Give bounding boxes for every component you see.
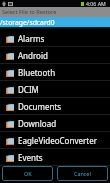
staticText: DCIM [18,84,39,95]
other: Download notification [2,1,6,7]
staticText: 4:06 AM [86,0,106,7]
staticText: Select File to Restore [2,8,57,16]
button[interactable]: Android [0,47,110,64]
staticText: /storage/sdcard0 [0,18,55,27]
staticText: Bluetooth [18,67,56,78]
button[interactable]: Bluetooth [0,64,110,81]
staticText: Download [18,118,57,129]
button[interactable]: Documents [0,98,110,115]
staticText: Android [18,50,48,61]
button[interactable]: Events [0,149,110,166]
button[interactable]: Download [0,115,110,132]
button[interactable]: Alarms [0,30,110,47]
button[interactable]: OK [2,166,53,181]
button[interactable]: EagleVideoConverter [0,132,110,149]
staticText: Events [18,152,43,163]
staticText: Documents [18,101,62,112]
button[interactable]: DCIM [0,81,110,98]
staticText: OK [24,170,32,177]
button[interactable]: Cancel [57,166,108,181]
staticText: Alarms [18,33,45,44]
staticText: EagleVideoConverter [18,135,97,146]
other: Screenshot notification [8,1,13,7]
staticText: Cancel [74,170,91,177]
